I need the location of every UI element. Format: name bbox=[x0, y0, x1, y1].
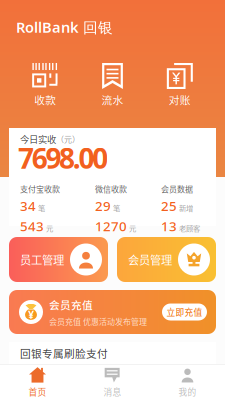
staticText: 我的 bbox=[178, 385, 196, 398]
button[interactable]: 收款 bbox=[11, 63, 79, 107]
button[interactable]: 我的 bbox=[150, 365, 225, 399]
button[interactable]: 员工管理 bbox=[9, 237, 108, 282]
staticText: 今日实收 bbox=[20, 132, 56, 146]
staticText: ¥ bbox=[28, 307, 34, 322]
button[interactable]: ¥ bbox=[9, 290, 216, 334]
staticText: 新增 bbox=[179, 203, 193, 213]
staticText: 13 bbox=[161, 217, 177, 235]
staticText: 25 bbox=[161, 197, 177, 215]
staticText: 会员充值 优惠活动发布管理 bbox=[49, 315, 147, 327]
button[interactable]: 首页 bbox=[0, 365, 75, 399]
staticText: 收款 bbox=[34, 92, 56, 107]
staticText: 34 bbox=[20, 197, 36, 215]
staticText: 消息 bbox=[103, 385, 121, 398]
staticText: 7698.00 bbox=[18, 139, 108, 177]
staticText: 微信收款 bbox=[95, 183, 127, 195]
staticText: 流水 bbox=[101, 92, 123, 107]
staticText: 会员管理 bbox=[128, 251, 172, 268]
staticText: 会员数据 bbox=[161, 183, 193, 195]
button[interactable]: 消息 bbox=[75, 365, 150, 399]
staticText: 笔 bbox=[113, 203, 120, 213]
staticText: 首页 bbox=[28, 385, 46, 398]
staticText: 29 bbox=[95, 197, 111, 215]
staticText: 元 bbox=[46, 223, 53, 233]
button[interactable]: 流水 bbox=[79, 63, 146, 107]
staticText: 会员充值 bbox=[49, 297, 93, 312]
staticText: 立即充值 bbox=[166, 306, 202, 318]
staticText: RollBank 回银 bbox=[16, 17, 113, 37]
staticText: 笔 bbox=[38, 203, 45, 213]
staticText: 1270 bbox=[95, 217, 127, 235]
staticText: 员工管理 bbox=[20, 251, 64, 268]
staticText: 对账 bbox=[169, 92, 191, 107]
staticText: （元） bbox=[56, 133, 80, 145]
staticText: 支付宝收款 bbox=[20, 183, 60, 195]
button[interactable]: 对账 bbox=[146, 63, 213, 107]
button[interactable]: 会员管理 bbox=[117, 237, 216, 282]
staticText: 老顾客 bbox=[179, 223, 200, 233]
staticText: 回银专属刷脸支付 bbox=[20, 345, 108, 361]
staticText: 543 bbox=[20, 217, 44, 235]
staticText: 元 bbox=[129, 223, 136, 233]
